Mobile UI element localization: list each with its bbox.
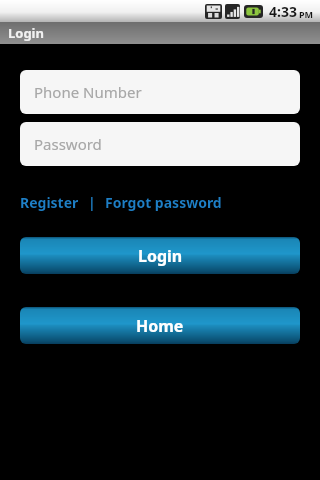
staticText: Register [20, 193, 79, 211]
button[interactable]: Password [20, 122, 300, 166]
staticText: Password [34, 134, 102, 154]
staticText: Home [136, 315, 184, 337]
staticText: 4:33 [269, 2, 297, 21]
staticText: Login [138, 245, 183, 267]
staticText: Phone Number [34, 82, 142, 102]
staticText: | [88, 193, 96, 211]
button[interactable]: Register [20, 193, 79, 211]
button[interactable]: Home [20, 307, 300, 344]
staticText: PM [299, 8, 314, 20]
button[interactable]: Forgot password [105, 193, 222, 211]
button[interactable]: Login [20, 237, 300, 274]
staticText: Login [8, 24, 44, 42]
button[interactable]: Phone Number [20, 70, 300, 114]
staticText: Forgot password [105, 193, 222, 211]
